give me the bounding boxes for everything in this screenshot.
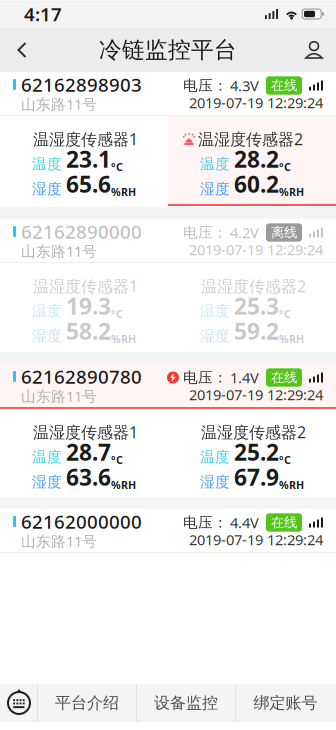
staticText: 67.9 [234, 462, 279, 492]
staticText: 湿度 [200, 473, 230, 491]
staticText: 4.4V [230, 513, 259, 532]
staticText: 温湿度传感器2 [201, 421, 306, 443]
staticText: 离线 [271, 224, 297, 241]
staticText: 在线 [271, 77, 297, 94]
staticText: %RH [279, 185, 304, 199]
staticText: 1.4V [230, 368, 259, 387]
staticText: 28.7 [66, 437, 111, 467]
button[interactable]: 绑定账号 [236, 684, 335, 722]
staticText: 62162898903 [21, 72, 142, 97]
staticText: 19.3 [66, 291, 111, 321]
staticText: °C [279, 307, 291, 321]
staticText: 湿度 [200, 327, 230, 345]
staticText: 2019-07-19 12:29:24 [189, 93, 323, 112]
button[interactable]: 账号 [292, 28, 336, 72]
staticText: 湿度 [32, 327, 62, 345]
staticText: 23.1 [66, 144, 111, 174]
button[interactable]: 设备监控 [137, 684, 235, 722]
staticText: 湿度 [32, 180, 62, 198]
staticText: °C [111, 453, 123, 467]
staticText: %RH [111, 185, 136, 199]
staticText: 25.3 [234, 291, 279, 321]
staticText: 湿度 [200, 180, 230, 198]
staticText: 温度 [200, 448, 230, 466]
staticText: 绑定账号 [253, 693, 317, 713]
staticText: 山东路11号 [21, 94, 97, 114]
staticText: 电压： [183, 76, 228, 94]
staticText: 60.2 [234, 169, 279, 199]
staticText: 山东路11号 [21, 531, 97, 551]
staticText: 2019-07-19 12:29:24 [189, 530, 323, 549]
staticText: 在线 [271, 369, 297, 386]
button[interactable]: 键盘 [1, 684, 37, 722]
staticText: %RH [279, 478, 304, 492]
button[interactable]: 返回 [0, 28, 44, 72]
staticText: 山东路11号 [21, 386, 97, 406]
staticText: 63.6 [66, 462, 111, 492]
staticText: 温湿度传感器1 [33, 128, 138, 150]
staticText: 2019-07-19 12:29:24 [189, 240, 323, 259]
staticText: 电压： [183, 368, 228, 386]
staticText: 25.2 [234, 437, 279, 467]
staticText: 冷链监控平台 [99, 36, 237, 64]
staticText: 62162890780 [21, 364, 142, 389]
staticText: 温度 [200, 302, 230, 320]
staticText: %RH [111, 478, 136, 492]
staticText: 温湿度传感器1 [33, 421, 138, 443]
staticText: 温度 [32, 302, 62, 320]
staticText: 山东路11号 [21, 241, 97, 261]
staticText: %RH [111, 332, 136, 346]
staticText: 电压： [183, 513, 228, 531]
staticText: 电压： [183, 223, 228, 241]
staticText: 温湿度传感器2 [201, 275, 306, 297]
staticText: 平台介绍 [55, 693, 119, 713]
staticText: 温湿度传感器1 [33, 275, 138, 297]
staticText: 59.2 [234, 316, 279, 346]
staticText: 58.2 [66, 316, 111, 346]
staticText: 温度 [200, 155, 230, 173]
staticText: 在线 [271, 514, 297, 531]
staticText: 2019-07-19 12:29:24 [189, 385, 323, 404]
staticText: °C [111, 307, 123, 321]
staticText: 62162000000 [21, 509, 142, 534]
staticText: %RH [279, 332, 304, 346]
staticText: 4:17 [24, 2, 62, 26]
staticText: °C [279, 453, 291, 467]
staticText: °C [279, 160, 291, 174]
staticText: 4.3V [230, 76, 259, 95]
staticText: 4.2V [230, 223, 259, 242]
staticText: 62162890000 [21, 219, 142, 244]
staticText: 湿度 [32, 473, 62, 491]
staticText: 65.6 [66, 169, 111, 199]
staticText: °C [111, 160, 123, 174]
button[interactable]: 平台介绍 [38, 684, 136, 722]
staticText: 温度 [32, 448, 62, 466]
staticText: 温度 [32, 155, 62, 173]
staticText: 温湿度传感器2 [198, 128, 303, 150]
staticText: 设备监控 [154, 693, 218, 713]
staticText: 28.2 [234, 144, 279, 174]
